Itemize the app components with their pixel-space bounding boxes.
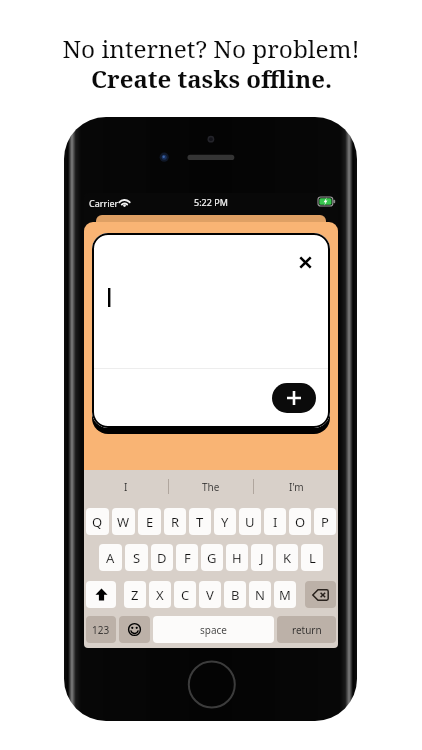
button[interactable]: I [84, 470, 168, 503]
staticText: F [184, 549, 191, 567]
button[interactable]: Y [214, 508, 236, 535]
button[interactable]: Close [293, 250, 317, 274]
button[interactable]: H [226, 544, 248, 571]
button[interactable]: I [264, 508, 286, 535]
staticText: W [117, 513, 130, 531]
button[interactable]: return [277, 616, 336, 643]
staticText: Z [131, 586, 139, 604]
staticText: 123 [92, 623, 110, 637]
staticText: J [260, 549, 264, 567]
staticText: Create tasks offline. [91, 62, 332, 95]
staticText: V [206, 586, 214, 604]
button[interactable]: K [276, 544, 298, 571]
button[interactable]: R [164, 508, 186, 535]
button[interactable]: T [189, 508, 211, 535]
button[interactable]: Add task [272, 383, 316, 413]
staticText: R [171, 513, 180, 531]
button[interactable]: V [199, 581, 221, 608]
staticText: No internet? No problem! [62, 32, 360, 65]
button[interactable]: space [153, 616, 274, 643]
staticText: The [202, 480, 220, 494]
staticText: K [283, 549, 292, 567]
button[interactable]: M [274, 581, 296, 608]
staticText: S [133, 549, 141, 567]
button[interactable]: Z [124, 581, 146, 608]
staticText: B [231, 586, 240, 604]
staticText: E [146, 513, 154, 531]
button[interactable]: E [138, 508, 161, 535]
button[interactable]: Emoji [119, 616, 150, 643]
button[interactable]: G [201, 544, 223, 571]
staticText: I [273, 513, 278, 531]
staticText: N [255, 586, 265, 604]
button[interactable]: F [176, 544, 198, 571]
button[interactable]: W [112, 508, 135, 535]
staticText: I [124, 480, 128, 494]
button[interactable]: U [239, 508, 261, 535]
staticText: G [207, 549, 217, 567]
button[interactable]: Shift [86, 581, 116, 608]
button[interactable]: Q [86, 508, 109, 535]
button[interactable]: J [251, 544, 273, 571]
button[interactable]: Backspace [305, 581, 336, 608]
staticText: I'm [289, 480, 304, 494]
staticText: space [200, 623, 227, 637]
staticText: 5:22 PM [194, 196, 228, 208]
button[interactable]: L [301, 544, 323, 571]
button[interactable]: 123 [86, 616, 116, 643]
staticText: O [295, 513, 306, 531]
staticText: T [196, 513, 204, 531]
staticText: C [181, 586, 190, 604]
button[interactable]: O [289, 508, 311, 535]
staticText: D [157, 549, 167, 567]
staticText: U [245, 513, 255, 531]
staticText: return [292, 623, 322, 637]
button[interactable]: P [314, 508, 336, 535]
staticText: A [106, 549, 115, 567]
button[interactable]: D [151, 544, 173, 571]
button[interactable]: I'm [254, 470, 338, 503]
staticText: H [232, 549, 242, 567]
staticText: Y [221, 513, 229, 531]
button[interactable]: The [169, 470, 253, 503]
staticText: M [279, 586, 291, 604]
button[interactable]: B [224, 581, 246, 608]
staticText: P [321, 513, 329, 531]
button[interactable]: N [249, 581, 271, 608]
staticText: Carrier [89, 197, 119, 209]
button[interactable]: C [174, 581, 196, 608]
staticText: L [309, 549, 316, 567]
staticText: X [156, 586, 164, 604]
button[interactable]: X [149, 581, 171, 608]
button[interactable]: A [99, 544, 122, 571]
button[interactable]: S [125, 544, 148, 571]
staticText: Q [92, 513, 103, 531]
